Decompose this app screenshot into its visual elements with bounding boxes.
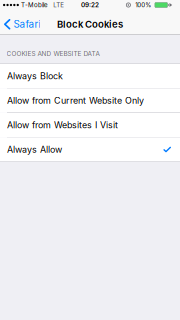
staticText: Block Cookies (57, 18, 123, 30)
staticText: LTE (53, 1, 64, 9)
staticText: Safari (13, 18, 40, 30)
button[interactable]: Always Allow (0, 137, 180, 161)
staticText: Allow from Current Website Only (7, 95, 144, 106)
button[interactable]: Allow from Current Website Only (0, 88, 180, 112)
button[interactable]: Always Block (0, 64, 180, 88)
staticText: COOKIES AND WEBSITE DATA (7, 50, 100, 58)
staticText: T-Mobile (21, 1, 48, 9)
staticText: Always Block (7, 71, 63, 81)
staticText: Always Allow (7, 144, 62, 155)
button[interactable]: Safari (0, 10, 45, 34)
staticText: 100% (135, 1, 151, 9)
staticText: Allow from Websites I Visit (7, 120, 118, 130)
button[interactable]: Allow from Websites I Visit (0, 113, 180, 137)
staticText: 09:22 (81, 1, 99, 9)
